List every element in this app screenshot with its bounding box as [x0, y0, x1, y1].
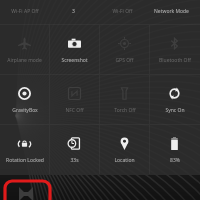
button[interactable]: Wi-Fi AP Off — [0, 0, 49, 24]
button[interactable]: Location — [100, 125, 149, 174]
button[interactable]: 3 — [49, 0, 98, 24]
staticText: Wi-Fi Off — [112, 8, 133, 15]
button[interactable]: Sync On — [150, 75, 199, 124]
button[interactable]: GPS Off — [100, 25, 149, 74]
staticText: NFC Off — [65, 107, 84, 114]
button[interactable]: 33s — [50, 125, 99, 174]
staticText: Rotation Locked — [6, 157, 44, 164]
staticText: 3 — [72, 8, 75, 15]
staticText: Sync On — [165, 107, 185, 114]
staticText: 83% — [170, 157, 180, 164]
button[interactable]: Screenshot — [50, 25, 99, 74]
staticText: GravityBox — [12, 107, 38, 114]
button[interactable]: Torch Off — [100, 75, 149, 124]
staticText: 33s — [70, 157, 79, 164]
staticText: Wi-Fi AP Off — [11, 8, 39, 15]
staticText: Network Mode — [154, 8, 189, 15]
button[interactable]: Airplane mode — [0, 25, 49, 74]
staticText: Bluetooth Off — [159, 57, 191, 64]
staticText: GPS Off — [115, 57, 134, 64]
button[interactable]: Bluetooth Off — [150, 25, 199, 74]
staticText: Screenshot — [61, 57, 88, 64]
button[interactable]: NFC Off — [50, 75, 99, 124]
staticText: Torch Off — [114, 107, 136, 114]
button[interactable]: Rotation Locked — [0, 125, 49, 174]
staticText: Airplane mode — [7, 57, 42, 64]
button[interactable]: GravityBox — [0, 75, 49, 124]
button[interactable]: Network Mode — [147, 0, 196, 24]
button[interactable]: 83% — [150, 125, 199, 174]
button[interactable]: Wi-Fi Off — [98, 0, 147, 24]
staticText: Location — [114, 157, 135, 164]
